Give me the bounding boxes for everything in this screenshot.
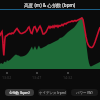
button[interactable]: 高度 (m) & 心拍数 (bpm) [0, 0, 100, 10]
staticText: 14:32 [63, 75, 73, 80]
staticText: ケイデンス (rpm) [39, 90, 66, 95]
staticText: 高度 (m) & 心拍数 (bpm) [24, 2, 76, 8]
button[interactable]: パワー (W) [71, 89, 98, 96]
button[interactable]: ケイデンス (rpm) [38, 89, 67, 96]
staticText: 心拍数 (bpm) [9, 90, 30, 95]
staticText: パワー (W) [76, 90, 93, 95]
staticText: 13:47 [32, 75, 42, 80]
staticText: 13:02 [2, 75, 12, 80]
button[interactable]: 心拍数 (bpm) [5, 89, 34, 96]
